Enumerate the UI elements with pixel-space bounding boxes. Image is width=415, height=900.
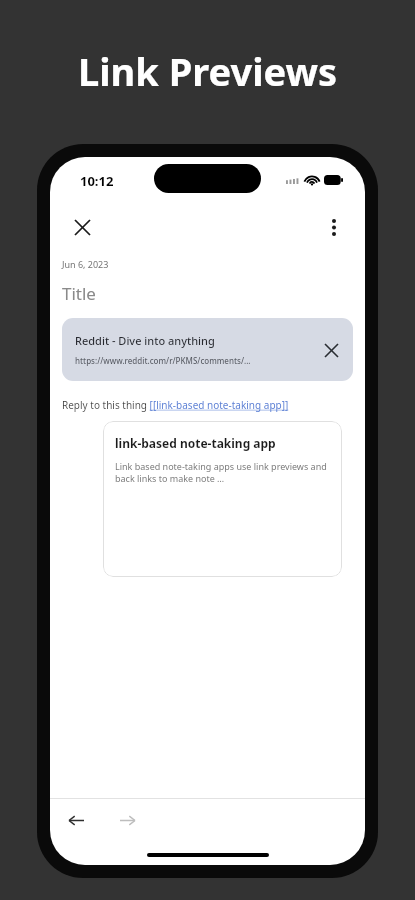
button[interactable]: More options (316, 209, 352, 245)
staticText: Link based note-taking apps use link pre… (115, 460, 332, 485)
staticText: Reddit - Dive into anything (75, 333, 215, 348)
button[interactable]: Reddit - Dive into anything (62, 318, 353, 381)
staticText: Jun 6, 2023 (62, 258, 109, 270)
button[interactable]: Reply to this thing [[link-based note-ta… (62, 398, 289, 412)
button[interactable]: Forward (111, 804, 143, 836)
button[interactable]: Remove link preview (309, 328, 353, 372)
button[interactable]: link-based note-taking app (103, 421, 342, 577)
staticText: Title (62, 282, 96, 305)
staticText: 10:12 (80, 172, 114, 190)
staticText: https://www.reddit.com/r/PKMS/comments/.… (75, 355, 251, 366)
button[interactable]: Back (60, 804, 92, 836)
button[interactable]: Close (64, 209, 100, 245)
staticText: Link Previews (78, 45, 338, 97)
staticText: link-based note-taking app (115, 435, 276, 451)
